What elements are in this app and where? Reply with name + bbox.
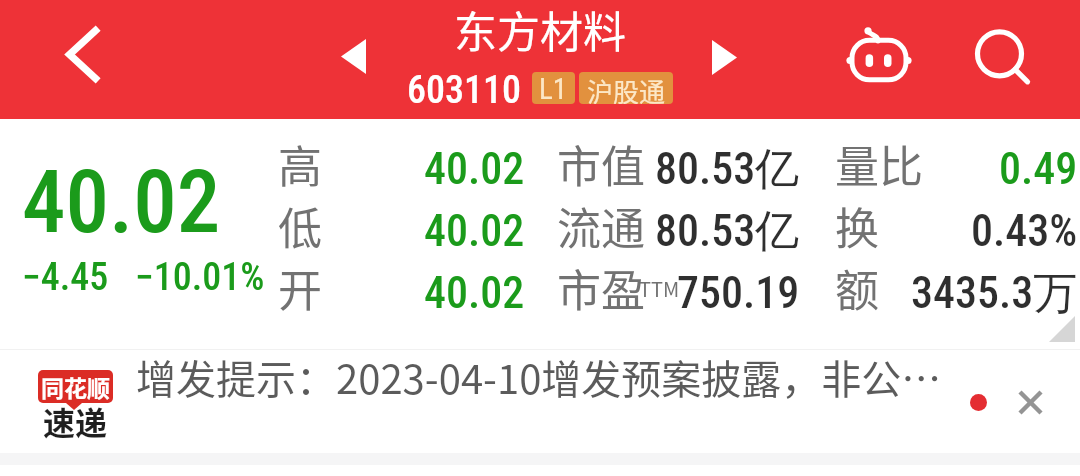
button[interactable]: 市值: [557, 132, 800, 194]
button[interactable]: 流通: [557, 194, 800, 256]
staticText: 同花顺: [41, 370, 110, 403]
button[interactable]: Close: [1002, 374, 1058, 430]
button[interactable]: 同花顺: [0, 350, 1080, 452]
button[interactable]: 低: [278, 194, 525, 256]
staticText: 东方材料: [454, 0, 626, 60]
button[interactable]: 沪股通: [579, 72, 673, 104]
staticText: 开: [278, 256, 322, 318]
staticText: 0.43%: [971, 205, 1078, 257]
staticText: 40.02: [22, 151, 221, 253]
button[interactable]: AI assistant: [834, 14, 924, 96]
staticText: 低: [278, 194, 322, 256]
button[interactable]: Search: [953, 14, 1049, 96]
staticText: L1: [539, 72, 568, 104]
button[interactable]: 高: [278, 132, 525, 194]
button[interactable]: Expand details: [1049, 316, 1075, 342]
button[interactable]: 市盈: [557, 256, 800, 318]
staticText: 80.53亿: [655, 142, 800, 197]
staticText: 高: [278, 132, 322, 194]
button[interactable]: 量比: [835, 132, 1078, 194]
staticText: 速递: [43, 398, 108, 440]
staticText: 额: [835, 256, 879, 318]
staticText: 流通: [557, 194, 645, 256]
staticText: 603110: [407, 68, 521, 113]
staticText: 0.49: [999, 143, 1078, 195]
staticText: 增发提示：2023-04-10增发预案披露，非公…: [136, 348, 942, 406]
staticText: 750.19: [677, 267, 800, 319]
button[interactable]: 开: [278, 256, 525, 318]
button[interactable]: L1: [532, 72, 575, 104]
button[interactable]: Back: [36, 8, 128, 100]
staticText: 40.02: [424, 205, 525, 257]
staticText: TTM: [639, 274, 680, 303]
button[interactable]: Next stock: [688, 21, 760, 93]
staticText: 3435.3万: [911, 266, 1078, 321]
staticText: 量比: [835, 132, 923, 194]
button[interactable]: 额: [835, 256, 1078, 318]
staticText: −10.01%: [135, 255, 265, 300]
staticText: 市盈: [557, 256, 645, 318]
staticText: −4.45: [22, 255, 109, 300]
staticText: 40.02: [424, 143, 525, 195]
staticText: 市值: [557, 132, 645, 194]
staticText: 80.53亿: [655, 204, 800, 259]
staticText: 换: [835, 194, 879, 256]
staticText: 40.02: [424, 267, 525, 319]
staticText: 沪股通: [587, 72, 666, 104]
button[interactable]: Previous stock: [317, 20, 389, 92]
button[interactable]: 换: [835, 194, 1078, 256]
